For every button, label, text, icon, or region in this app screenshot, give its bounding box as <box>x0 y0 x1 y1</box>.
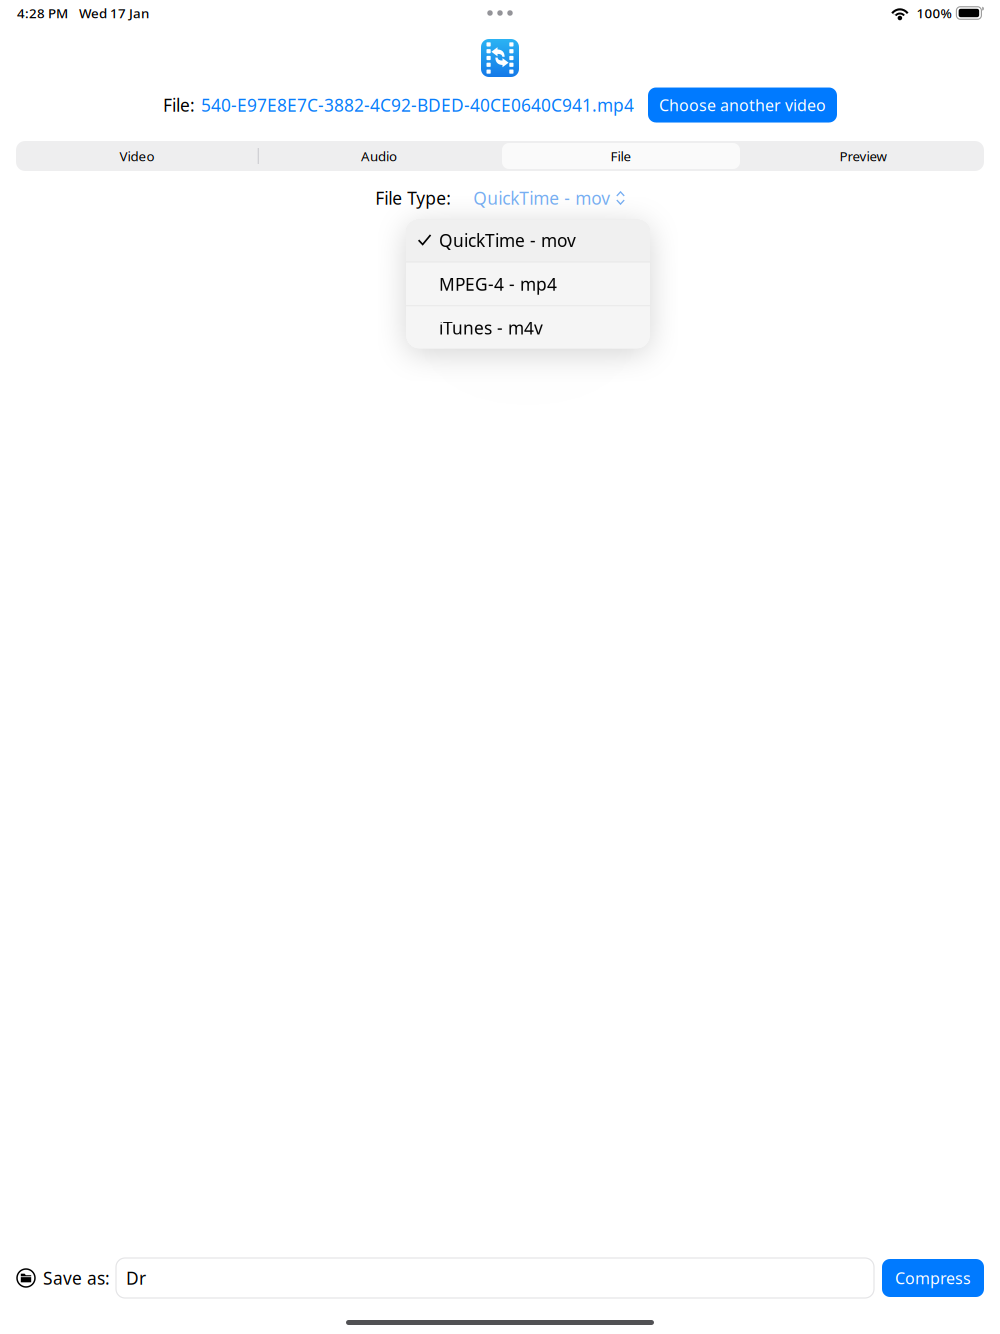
staticText: Audio <box>361 147 397 165</box>
button[interactable]: iTunes - m4v <box>406 306 650 349</box>
button[interactable]: Audio <box>258 141 500 171</box>
staticText: File <box>610 147 631 165</box>
button[interactable]: Choose another video <box>648 87 837 122</box>
staticText: 100% <box>916 4 951 22</box>
button[interactable]: Video <box>16 141 258 171</box>
staticText: Dr <box>126 1266 146 1289</box>
staticText: QuickTime - mov <box>439 229 576 252</box>
staticText: MPEG-4 - mp4 <box>439 272 557 295</box>
staticText: File: <box>163 93 195 116</box>
staticText: iTunes - m4v <box>439 316 543 339</box>
button[interactable]: QuickTime - mov <box>473 186 625 209</box>
staticText: Choose another video <box>659 94 826 116</box>
button[interactable]: QuickTime - mov <box>406 219 650 262</box>
staticText: Wed 17 Jan <box>79 4 149 22</box>
staticText: 4:28 PM <box>17 4 68 22</box>
staticText: Video <box>119 147 154 165</box>
staticText: QuickTime - mov <box>473 186 610 209</box>
staticText: 540-E97E8E7C-3882-4C92-BDED-40CE0640C941… <box>201 93 634 116</box>
staticText: Save as: <box>43 1266 110 1289</box>
button[interactable]: File <box>500 141 742 171</box>
button[interactable]: MPEG-4 - mp4 <box>406 262 650 305</box>
button[interactable]: 540-E97E8E7C-3882-4C92-BDED-40CE0640C941… <box>201 93 634 116</box>
button[interactable]: Preview <box>742 141 984 171</box>
staticText: Compress <box>895 1267 971 1289</box>
staticText: File Type: <box>375 186 451 209</box>
button[interactable]: Dr <box>116 1258 874 1298</box>
button[interactable]: Compress <box>882 1259 984 1297</box>
staticText: Preview <box>839 147 886 165</box>
button[interactable]: Choose destination folder <box>16 1268 36 1288</box>
